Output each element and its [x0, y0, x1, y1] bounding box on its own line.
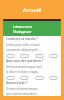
- staticText: Comment ca marche ?: [6, 37, 38, 41]
- button[interactable]: OUI: [6, 76, 15, 80]
- staticText: Lorem ipsum dolor sit amet,: [6, 43, 41, 47]
- button[interactable]: Laissez-nous: [3, 19, 61, 36]
- staticText: OUI: [37, 55, 42, 58]
- staticText: ut labore et dolore magna.: [6, 70, 39, 74]
- button[interactable]: NON: [20, 76, 29, 80]
- staticText: Ut enim ad minim veniam,: [6, 87, 39, 91]
- staticText: OUI: [8, 55, 13, 58]
- staticText: NON: [51, 77, 57, 80]
- staticText: consectetur adipiscing elit.: [6, 48, 39, 52]
- staticText: Accueil: [23, 6, 42, 14]
- button[interactable]: NON: [20, 54, 29, 58]
- staticText: Laissez-nous: [13, 25, 33, 29]
- staticText: OUI: [37, 77, 42, 80]
- staticText: Madagascar: [13, 30, 32, 34]
- staticText: NON: [51, 55, 57, 58]
- staticText: NON: [22, 55, 28, 58]
- staticText: NON: [22, 77, 28, 80]
- staticText: quis nostrud exercitation.: [6, 92, 38, 96]
- staticText: OUI: [8, 77, 13, 80]
- button[interactable]: OUI: [35, 54, 44, 58]
- staticText: Sed do eiusmod tempor incid: [6, 65, 42, 69]
- button[interactable]: OUI: [6, 54, 15, 58]
- button[interactable]: NON: [49, 54, 58, 58]
- staticText: Besoin d'aide ?: [6, 81, 28, 85]
- button[interactable]: NON: [49, 76, 58, 80]
- staticText: Avez-vous des questions ?: [6, 59, 44, 63]
- button[interactable]: OUI: [35, 76, 44, 80]
